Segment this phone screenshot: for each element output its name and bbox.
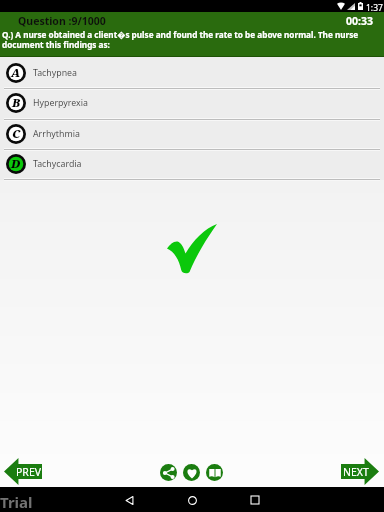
staticText: Question :9/1000: [18, 14, 106, 28]
button[interactable]: C: [0, 118, 384, 148]
staticText: Trial: [0, 492, 33, 512]
staticText: 1:37: [366, 2, 383, 14]
staticText: Arrhythmia: [33, 128, 80, 140]
button[interactable]: NEXT: [341, 458, 379, 485]
button[interactable]: PREV: [4, 458, 42, 485]
staticText: B: [12, 95, 21, 111]
button[interactable]: Back: [117, 488, 141, 512]
staticText: C: [12, 126, 21, 142]
button[interactable]: Bookmark: [206, 464, 223, 481]
button[interactable]: A: [0, 57, 384, 87]
staticText: A: [11, 65, 21, 81]
staticText: Tachypnea: [33, 67, 78, 79]
staticText: 00:33: [346, 14, 373, 28]
button[interactable]: Favorite: [183, 464, 200, 481]
staticText: PREV: [16, 465, 42, 479]
staticText: D: [11, 156, 21, 172]
staticText: NEXT: [343, 465, 369, 479]
button[interactable]: Recents: [243, 488, 267, 512]
staticText: Q.) A nurse obtained a client�s pulse an…: [2, 29, 382, 50]
button[interactable]: Home: [180, 488, 204, 512]
button[interactable]: Share: [160, 464, 177, 481]
button[interactable]: D: [0, 148, 384, 178]
staticText: Hyperpyrexia: [33, 97, 88, 109]
button[interactable]: B: [0, 87, 384, 117]
staticText: Tachycardia: [33, 158, 82, 170]
